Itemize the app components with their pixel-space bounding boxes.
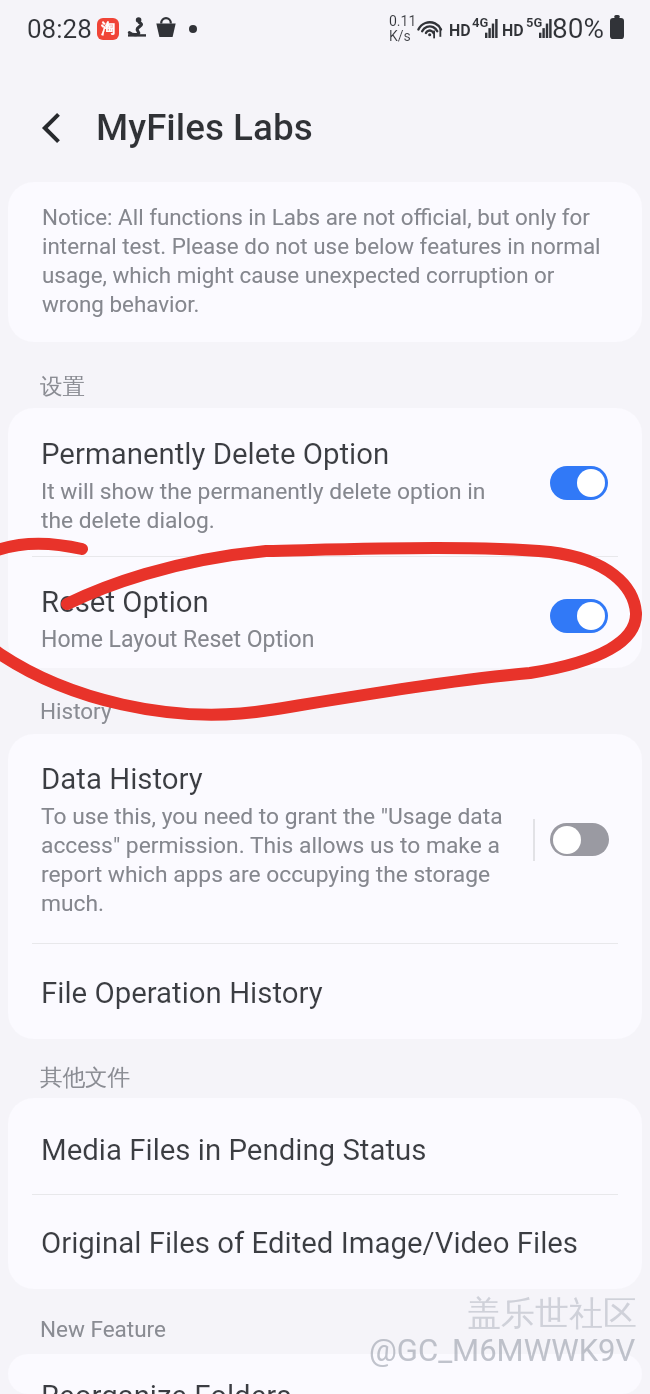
- staticText: 淘: [101, 20, 115, 38]
- staticText: History: [40, 698, 112, 724]
- button[interactable]: Back: [27, 103, 77, 153]
- staticText: 08:28: [27, 14, 92, 44]
- staticText: MyFiles Labs: [96, 106, 313, 149]
- button[interactable]: Toggle on: [550, 466, 608, 500]
- staticText: Notice: All functions in Labs are not of…: [42, 204, 601, 317]
- staticText: It will show the permanently delete opti…: [41, 478, 486, 534]
- staticText: 设置: [40, 372, 85, 400]
- staticText: File Operation History: [41, 976, 323, 1010]
- staticText: 其他文件: [40, 1063, 130, 1091]
- button[interactable]: Toggle off: [550, 823, 609, 856]
- button[interactable]: Reorganize Folders: [8, 1354, 642, 1394]
- staticText: 盖乐世社区: [467, 1292, 637, 1335]
- staticText: @GC_M6MWWK9V: [369, 1332, 636, 1368]
- button[interactable]: Media Files in Pending Status: [8, 1098, 642, 1194]
- staticText: 4G: [472, 15, 489, 30]
- staticText: 0.11: [389, 13, 417, 29]
- staticText: Reset Option: [41, 585, 209, 619]
- staticText: To use this, you need to grant the "Usag…: [41, 803, 503, 917]
- staticText: Reorganize Folders: [41, 1379, 292, 1394]
- staticText: HD: [449, 21, 471, 40]
- button[interactable]: Original Files of Edited Image/Video Fil…: [8, 1195, 642, 1289]
- staticText: 5G: [526, 15, 543, 30]
- button[interactable]: Reset Option: [8, 557, 642, 668]
- staticText: Data History: [41, 762, 203, 796]
- staticText: HD: [502, 21, 524, 40]
- staticText: Permanently Delete Option: [41, 437, 390, 471]
- button[interactable]: Data History: [8, 734, 642, 943]
- button[interactable]: File Operation History: [8, 944, 642, 1035]
- staticText: K/s: [389, 28, 411, 44]
- button[interactable]: Toggle on: [550, 599, 608, 633]
- button[interactable]: Permanently Delete Option: [8, 408, 642, 556]
- staticText: 80%: [552, 12, 604, 45]
- staticText: Original Files of Edited Image/Video Fil…: [41, 1226, 579, 1260]
- staticText: New Feature: [40, 1316, 166, 1342]
- staticText: Media Files in Pending Status: [41, 1133, 427, 1167]
- staticText: Home Layout Reset Option: [41, 626, 315, 653]
